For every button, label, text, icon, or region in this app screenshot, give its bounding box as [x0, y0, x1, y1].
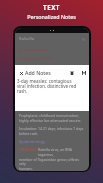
staticText: Prophylaxis: childhood immunisation;: [19, 113, 79, 118]
staticText: humans.: [19, 166, 33, 171]
button[interactable]: Close: [18, 70, 24, 76]
staticText: Rubella virus, an RNA togavirus,: [38, 147, 85, 157]
button[interactable]: Delete: [68, 69, 75, 76]
staticText: ETIOLOGY: [19, 147, 38, 152]
staticText: Epidemiology: [19, 139, 45, 144]
staticText: Rubella ICD-10: B06: [19, 56, 53, 61]
staticText: Rubella: [19, 36, 35, 42]
button[interactable]: Save: [80, 69, 87, 76]
staticText: Add Notes: [25, 69, 51, 76]
staticText: highly effective live attenuated vaccine…: [19, 118, 82, 123]
staticText: TEXT: [43, 3, 60, 11]
staticText: Incubation: 14-21 days; infectious 7 day…: [19, 126, 84, 131]
staticText: German measles: [19, 47, 48, 52]
staticText: Personalized Notes: [27, 13, 76, 20]
staticText: before rash.: [19, 131, 39, 136]
staticText: member of Togaviridae genus; affects onl…: [19, 157, 85, 166]
staticText: 3-day measles: contagious viral infectio…: [17, 78, 81, 94]
